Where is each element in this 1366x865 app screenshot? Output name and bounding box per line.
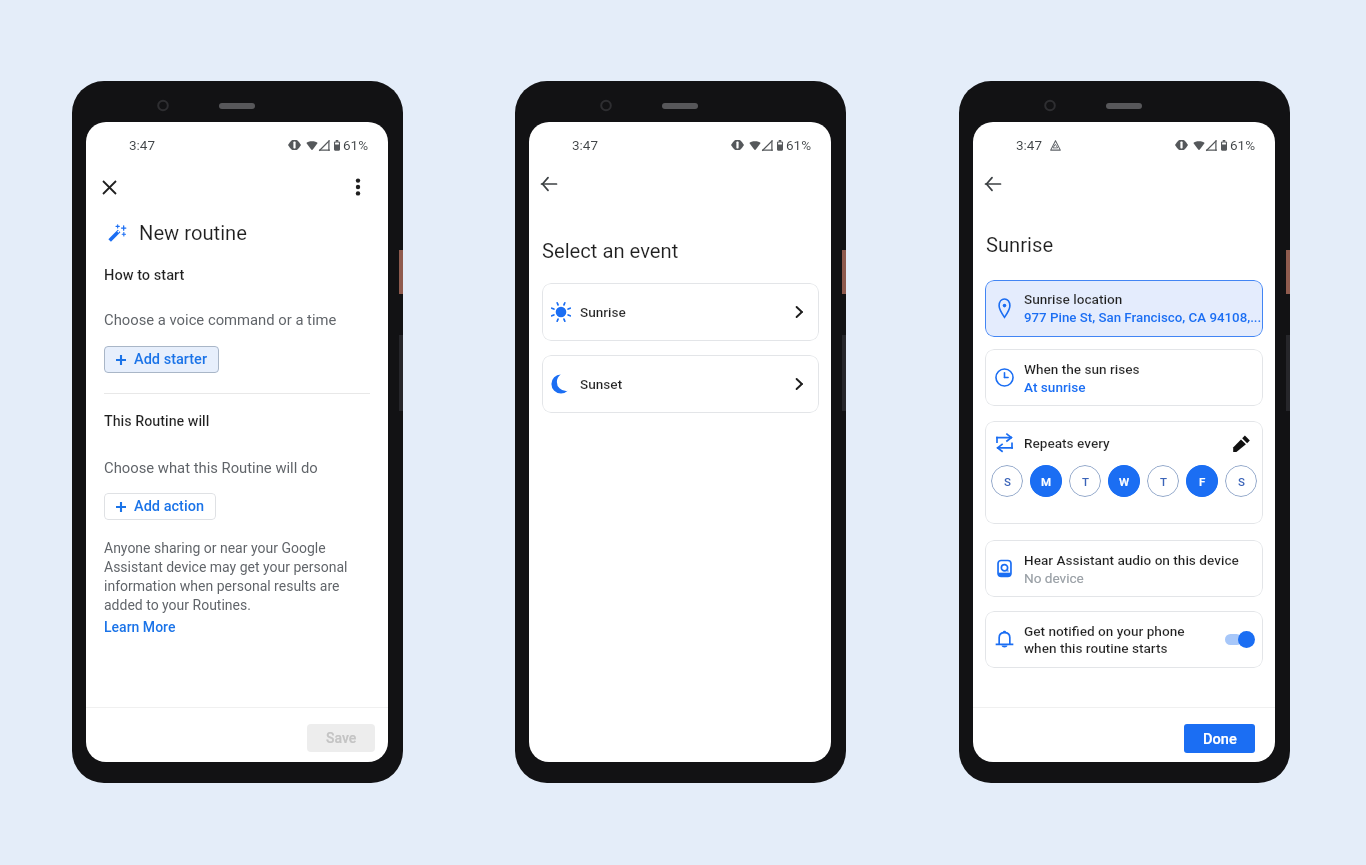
staticText: 3:47	[1016, 137, 1043, 153]
staticText: At sunrise	[1024, 379, 1086, 395]
button[interactable]: Save	[307, 724, 375, 752]
staticText: How to start	[104, 266, 185, 283]
staticText: Choose what this Routine will do	[104, 459, 318, 476]
staticText: Sunrise location	[1024, 291, 1123, 307]
button[interactable]: Done	[1184, 724, 1255, 753]
staticText: When the sun rises	[1024, 361, 1140, 377]
staticText: 61%	[343, 137, 369, 153]
staticText: Add starter	[134, 351, 207, 368]
staticText: M	[1041, 475, 1052, 488]
staticText: Sunset	[580, 376, 623, 392]
staticText: Select an event	[542, 239, 679, 263]
staticText: Sunrise	[580, 304, 626, 320]
staticText: Sunrise	[986, 233, 1054, 257]
staticText: W	[1119, 475, 1130, 488]
button[interactable]: Notification toggle	[1225, 631, 1255, 648]
staticText: 3:47	[129, 137, 156, 153]
button[interactable]: Add starter	[104, 346, 219, 373]
button[interactable]: More options	[341, 170, 375, 204]
button[interactable]: Learn More	[104, 619, 176, 635]
staticText: F	[1199, 475, 1206, 488]
staticText: New routine	[139, 221, 247, 245]
button[interactable]: When the sun rises	[985, 349, 1263, 406]
button[interactable]: Back	[532, 167, 566, 201]
button[interactable]: S	[1225, 465, 1257, 497]
staticText: 3:47	[572, 137, 599, 153]
staticText: Add action	[134, 498, 204, 515]
staticText: Choose a voice command or a time	[104, 311, 337, 328]
button[interactable]: Sunset	[542, 355, 819, 413]
button[interactable]: Back	[976, 167, 1010, 201]
button[interactable]: Close	[92, 170, 126, 204]
staticText: T	[1082, 475, 1089, 488]
staticText: Get notified on your phone when this rou…	[1024, 623, 1217, 657]
button[interactable]: W	[1108, 465, 1140, 497]
button[interactable]: T	[1069, 465, 1101, 497]
staticText: Hear Assistant audio on this device	[1024, 552, 1239, 568]
staticText: Repeats every	[1024, 435, 1110, 451]
staticText: Done	[1203, 730, 1237, 747]
button[interactable]: F	[1186, 465, 1218, 497]
button[interactable]: Sunrise location	[985, 280, 1263, 337]
staticText: 977 Pine St, San Francisco, CA 94108,...	[1024, 310, 1262, 326]
staticText: S	[1004, 475, 1011, 488]
button[interactable]: Edit	[1231, 433, 1252, 454]
button[interactable]: Add action	[104, 493, 216, 520]
button[interactable]: S	[991, 465, 1023, 497]
button[interactable]: Sunrise	[542, 283, 819, 341]
staticText: No device	[1024, 570, 1084, 586]
button[interactable]: M	[1030, 465, 1062, 497]
staticText: This Routine will	[104, 413, 210, 430]
button[interactable]: Get notified on your phone when this rou…	[985, 611, 1263, 668]
button[interactable]: T	[1147, 465, 1179, 497]
staticText: S	[1238, 475, 1245, 488]
button[interactable]: Repeats every	[985, 421, 1263, 524]
button[interactable]: Hear Assistant audio on this device	[985, 540, 1263, 597]
staticText: 61%	[1230, 137, 1256, 153]
staticText: Anyone sharing or near your Google Assis…	[104, 540, 352, 614]
staticText: T	[1160, 475, 1167, 488]
staticText: Save	[326, 730, 357, 746]
staticText: 61%	[786, 137, 812, 153]
